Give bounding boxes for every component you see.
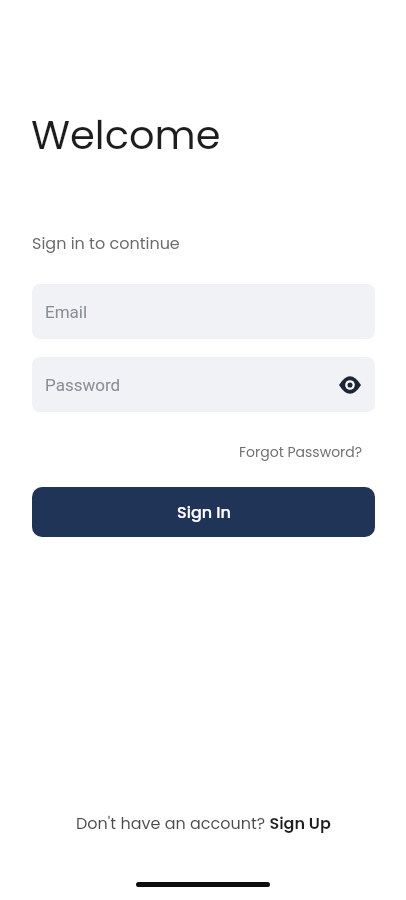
staticText: Welcome [31,107,221,163]
button[interactable]: Email [32,284,375,339]
staticText: Password [45,375,121,395]
button[interactable]: Sign In [32,487,375,537]
button[interactable] [338,373,362,397]
button[interactable]: Password [32,357,375,412]
staticText: Sign In [177,501,231,523]
button[interactable]: Forgot Password? [239,442,363,462]
staticText: Sign in to continue [32,232,180,254]
button[interactable]: Don't have an account? Sign Up [76,812,331,834]
staticText: Email [45,302,88,322]
